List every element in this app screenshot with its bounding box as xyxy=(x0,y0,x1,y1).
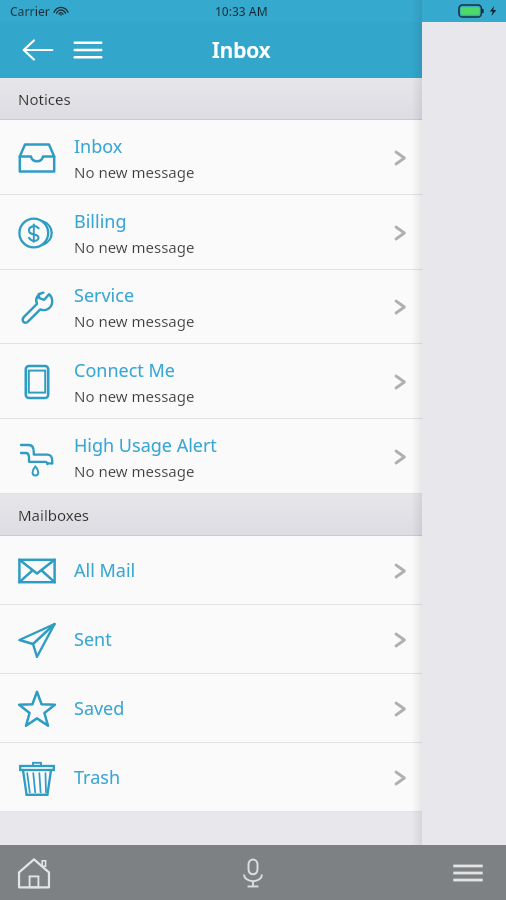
button[interactable]: Connect Me xyxy=(0,344,422,419)
button[interactable]: Back xyxy=(18,30,58,70)
staticText: Billing xyxy=(74,209,127,234)
button[interactable]: Inbox xyxy=(0,120,422,195)
button[interactable]: High Usage Alert xyxy=(0,419,422,494)
staticText: 10:33 AM xyxy=(215,3,268,19)
staticText: Carrier xyxy=(10,3,50,19)
button[interactable]: Billing xyxy=(0,195,422,270)
staticText: Sent xyxy=(74,627,112,652)
staticText: High Usage Alert xyxy=(74,433,217,458)
button[interactable]: Service xyxy=(0,270,422,344)
staticText: Notices xyxy=(18,89,71,109)
staticText: No new message xyxy=(74,386,195,406)
button[interactable]: All Mail xyxy=(0,536,422,605)
button[interactable]: Sent xyxy=(0,605,422,674)
staticText: Trash xyxy=(74,765,121,790)
staticText: Mailboxes xyxy=(18,505,90,525)
staticText: No new message xyxy=(74,237,195,257)
staticText: Connect Me xyxy=(74,358,175,383)
button[interactable]: Voice search xyxy=(227,847,279,899)
staticText: No new message xyxy=(74,311,195,331)
staticText: Inbox xyxy=(74,134,123,159)
staticText: Saved xyxy=(74,696,125,721)
staticText: Inbox xyxy=(212,36,271,65)
button[interactable]: Home xyxy=(8,847,60,899)
staticText: Service xyxy=(74,283,135,308)
staticText: No new message xyxy=(74,461,195,481)
button[interactable]: Saved xyxy=(0,674,422,743)
button[interactable]: Menu xyxy=(68,30,108,70)
button[interactable]: Trash xyxy=(0,743,422,812)
staticText: All Mail xyxy=(74,558,136,583)
button[interactable]: More options xyxy=(442,847,494,899)
staticText: No new message xyxy=(74,162,195,182)
